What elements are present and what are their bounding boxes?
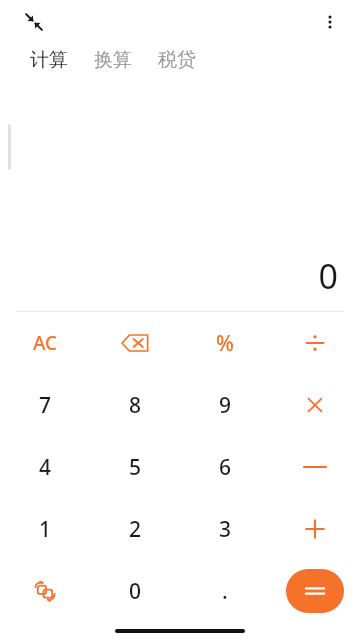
- button[interactable]: Convert: [0, 560, 90, 622]
- staticText: %: [216, 329, 234, 358]
- staticText: 2: [129, 515, 142, 544]
- staticText: 4: [39, 453, 52, 482]
- staticText: 5: [129, 453, 142, 482]
- button[interactable]: 计算: [28, 44, 70, 76]
- button[interactable]: More options: [314, 6, 346, 38]
- button[interactable]: 2: [90, 498, 180, 560]
- staticText: 税贷: [158, 48, 196, 72]
- button[interactable]: 8: [90, 374, 180, 436]
- button[interactable]: 4: [0, 436, 90, 498]
- staticText: 1: [39, 515, 52, 544]
- button[interactable]: 税贷: [156, 44, 198, 76]
- button[interactable]: AC: [0, 312, 90, 374]
- button[interactable]: %: [180, 312, 270, 374]
- button[interactable]: 换算: [92, 44, 134, 76]
- button[interactable]: 5: [90, 436, 180, 498]
- button[interactable]: Collapse: [18, 6, 50, 38]
- staticText: 换算: [94, 48, 132, 72]
- button[interactable]: 1: [0, 498, 90, 560]
- staticText: 0: [318, 253, 338, 299]
- staticText: 0: [129, 577, 142, 606]
- button[interactable]: Multiply: [270, 374, 360, 436]
- staticText: 3: [219, 515, 232, 544]
- button[interactable]: 6: [180, 436, 270, 498]
- button[interactable]: Divide: [270, 312, 360, 374]
- button[interactable]: Backspace: [90, 312, 180, 374]
- button[interactable]: 3: [180, 498, 270, 560]
- staticText: 7: [39, 391, 52, 420]
- staticText: 6: [219, 453, 232, 482]
- button[interactable]: 9: [180, 374, 270, 436]
- staticText: 计算: [30, 48, 68, 72]
- button[interactable]: 0: [90, 560, 180, 622]
- button[interactable]: Plus: [270, 498, 360, 560]
- staticText: 8: [129, 391, 142, 420]
- button[interactable]: .: [180, 560, 270, 622]
- staticText: AC: [33, 330, 58, 356]
- button[interactable]: Equals: [286, 569, 344, 613]
- button[interactable]: 7: [0, 374, 90, 436]
- staticText: .: [222, 577, 228, 606]
- staticText: 9: [219, 391, 232, 420]
- button[interactable]: Minus: [270, 436, 360, 498]
